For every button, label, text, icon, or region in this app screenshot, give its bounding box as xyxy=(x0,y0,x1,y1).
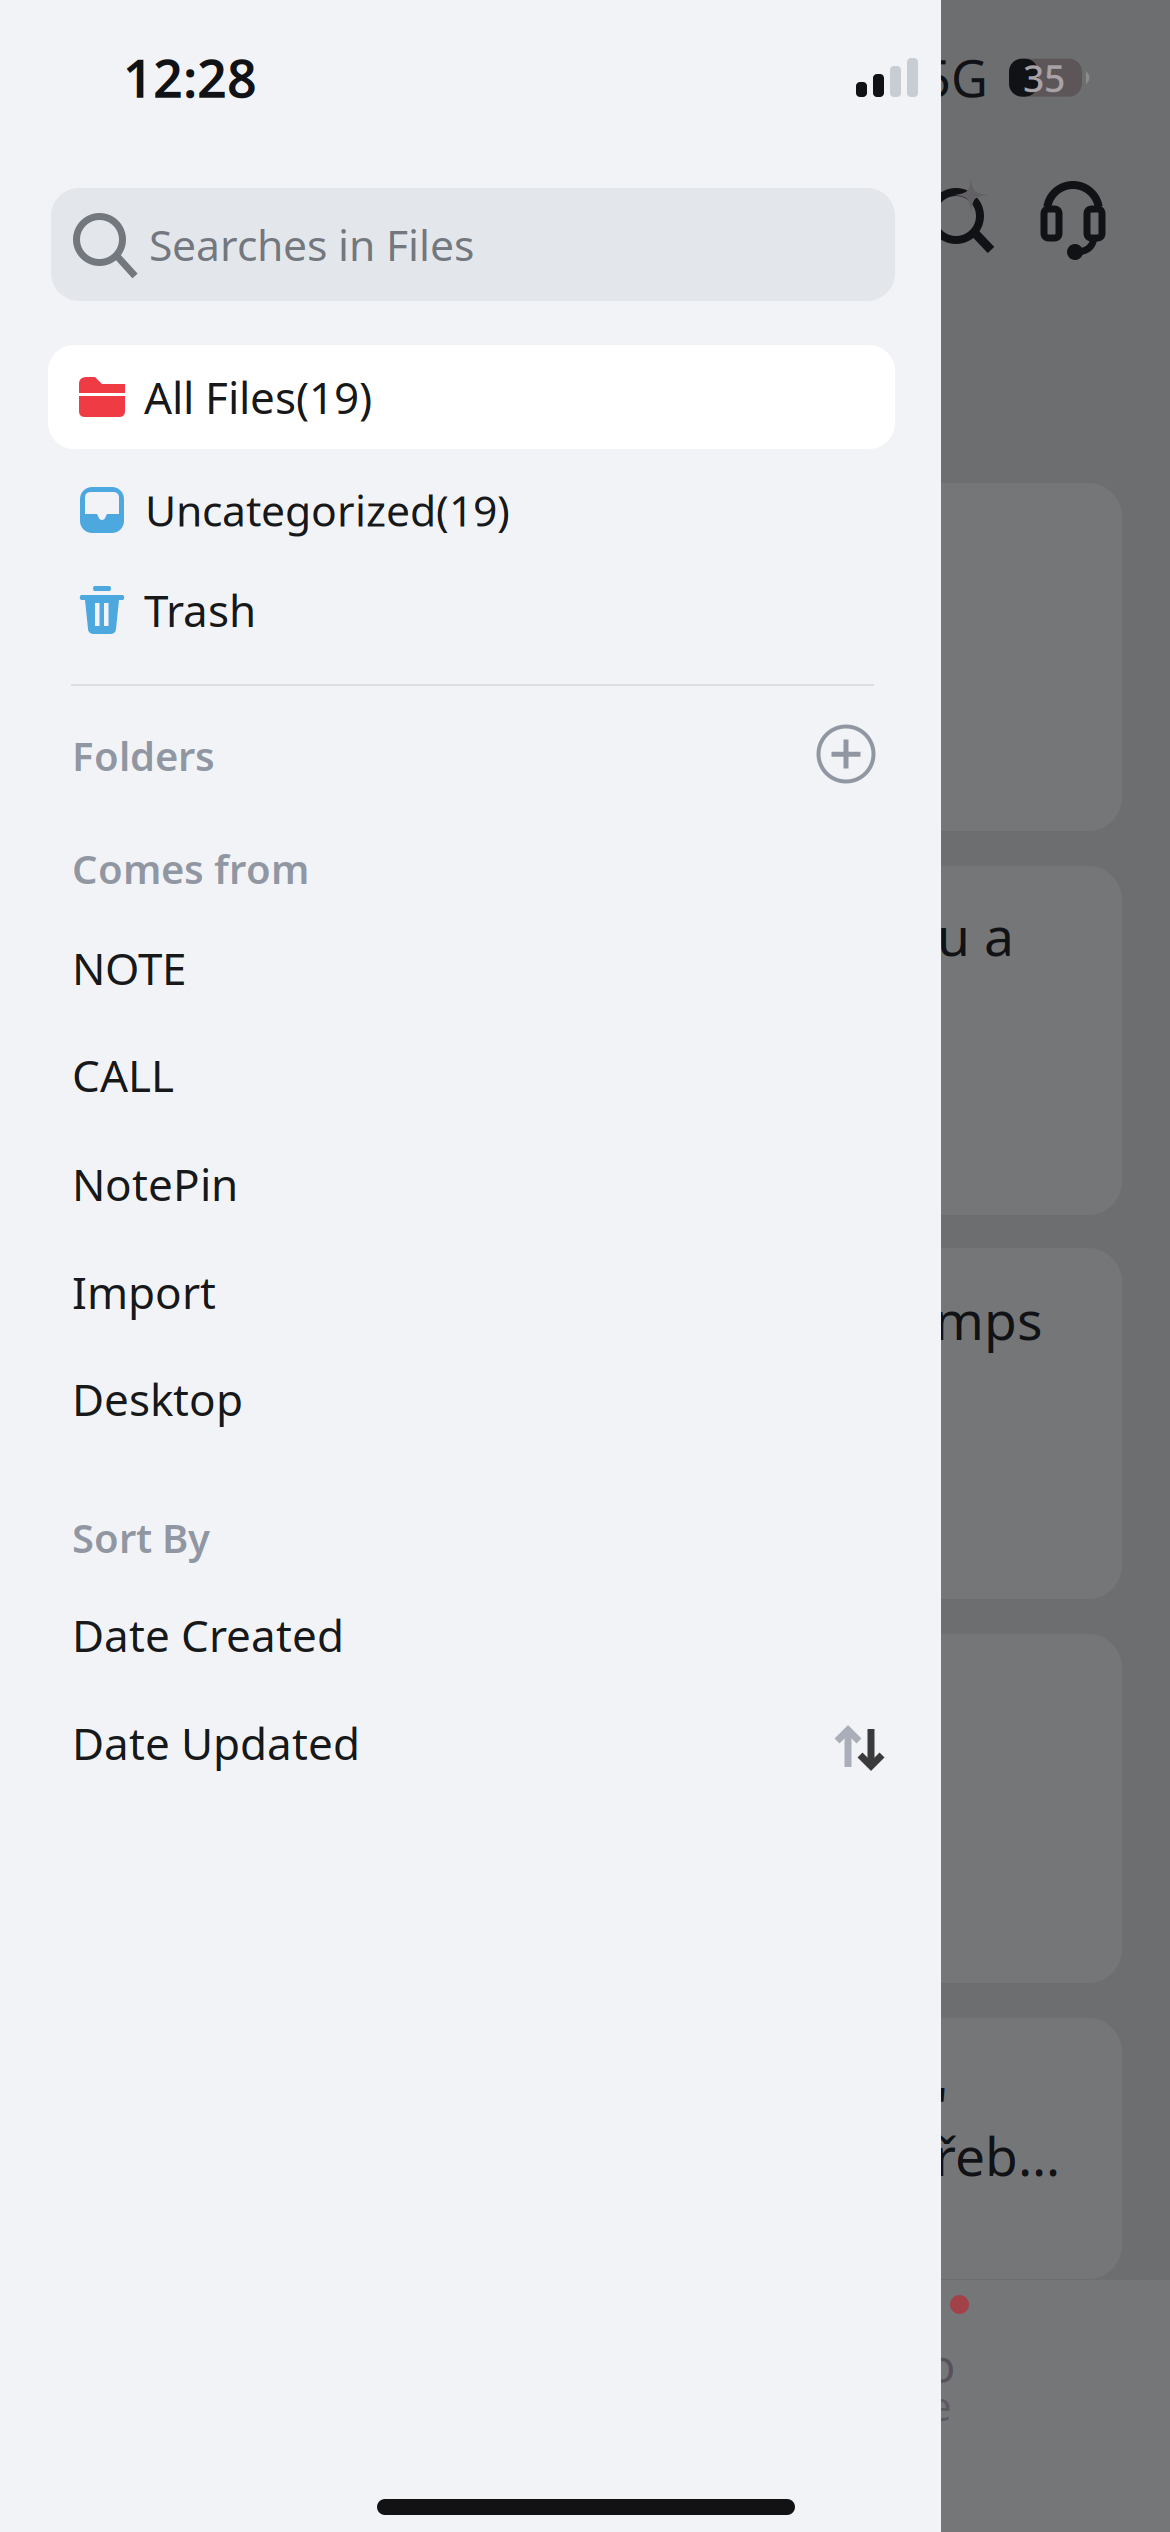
staticText: CALL xyxy=(72,1046,174,1104)
staticText: Sort By xyxy=(72,1511,210,1564)
staticText: Date Updated xyxy=(72,1714,360,1772)
button[interactable]: Import xyxy=(72,1268,882,1316)
staticText: Folders xyxy=(72,729,215,782)
button[interactable]: Support xyxy=(1041,178,1107,260)
staticText: u a xyxy=(937,900,1014,971)
staticText: 5G xyxy=(922,44,988,111)
staticText: Uncategorized(19) xyxy=(145,482,510,538)
button[interactable]: NOTE xyxy=(72,944,882,992)
staticText: mps xyxy=(934,1284,1043,1355)
staticText: Import xyxy=(72,1263,216,1321)
staticText: Searches in Files xyxy=(149,216,474,273)
button[interactable]: Uncategorized(19) xyxy=(48,458,895,562)
button[interactable]: Smart search xyxy=(928,186,994,252)
staticText: Desktop xyxy=(72,1370,243,1428)
staticText: řeb… xyxy=(934,2120,1060,2191)
staticText: Comes from xyxy=(72,842,309,895)
staticText: o xyxy=(928,2335,955,2395)
button[interactable]: CALL xyxy=(72,1051,882,1099)
staticText: NotePin xyxy=(72,1155,238,1213)
staticText: NOTE xyxy=(72,939,186,997)
button[interactable]: Date Created xyxy=(72,1611,882,1659)
button[interactable]: NotePin xyxy=(72,1160,882,1208)
button[interactable]: Date Updated xyxy=(72,1719,882,1767)
button[interactable]: Desktop xyxy=(72,1375,882,1423)
staticText: Date Created xyxy=(72,1606,344,1664)
staticText: All Files(19) xyxy=(144,368,372,426)
staticText: Trash xyxy=(144,581,256,639)
button[interactable]: Trash xyxy=(48,558,895,662)
button[interactable]: Searches in Files xyxy=(51,188,895,301)
staticText: 35 xyxy=(1023,53,1065,102)
staticText: e xyxy=(929,2379,952,2432)
staticText: 12:28 xyxy=(123,43,257,112)
button[interactable]: All Files(19) xyxy=(48,345,895,449)
staticText: ' xyxy=(936,2070,948,2141)
button[interactable]: Add folder xyxy=(816,724,876,784)
